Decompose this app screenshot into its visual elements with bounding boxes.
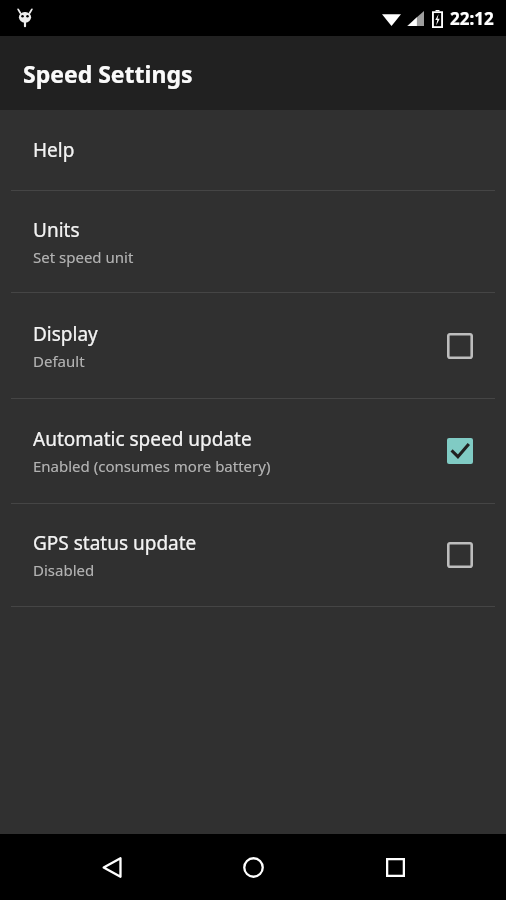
staticText: GPS status update — [33, 530, 197, 556]
staticText: Display — [33, 321, 98, 347]
button[interactable]: Enabled checkbox — [442, 433, 478, 469]
button[interactable]: Disabled checkbox — [442, 328, 478, 364]
button[interactable]: Recent apps — [365, 837, 425, 897]
button[interactable]: GPS status update — [0, 504, 506, 606]
staticText: Units — [33, 217, 80, 243]
staticText: 22:12 — [450, 7, 494, 30]
button[interactable]: Help — [0, 110, 506, 190]
staticText: Automatic speed update — [33, 426, 252, 452]
staticText: Enabled (consumes more battery) — [33, 456, 271, 476]
button[interactable]: Back — [82, 837, 142, 897]
staticText: Default — [33, 351, 85, 371]
staticText: Disabled — [33, 560, 95, 580]
button[interactable]: Units — [0, 191, 506, 292]
staticText: Help — [33, 137, 75, 163]
button[interactable]: Home — [223, 837, 283, 897]
button[interactable]: Display — [0, 293, 506, 398]
button[interactable]: Automatic speed update — [0, 399, 506, 503]
staticText: Speed Settings — [23, 58, 193, 89]
staticText: Set speed unit — [33, 247, 134, 267]
button[interactable]: Disabled checkbox — [442, 537, 478, 573]
